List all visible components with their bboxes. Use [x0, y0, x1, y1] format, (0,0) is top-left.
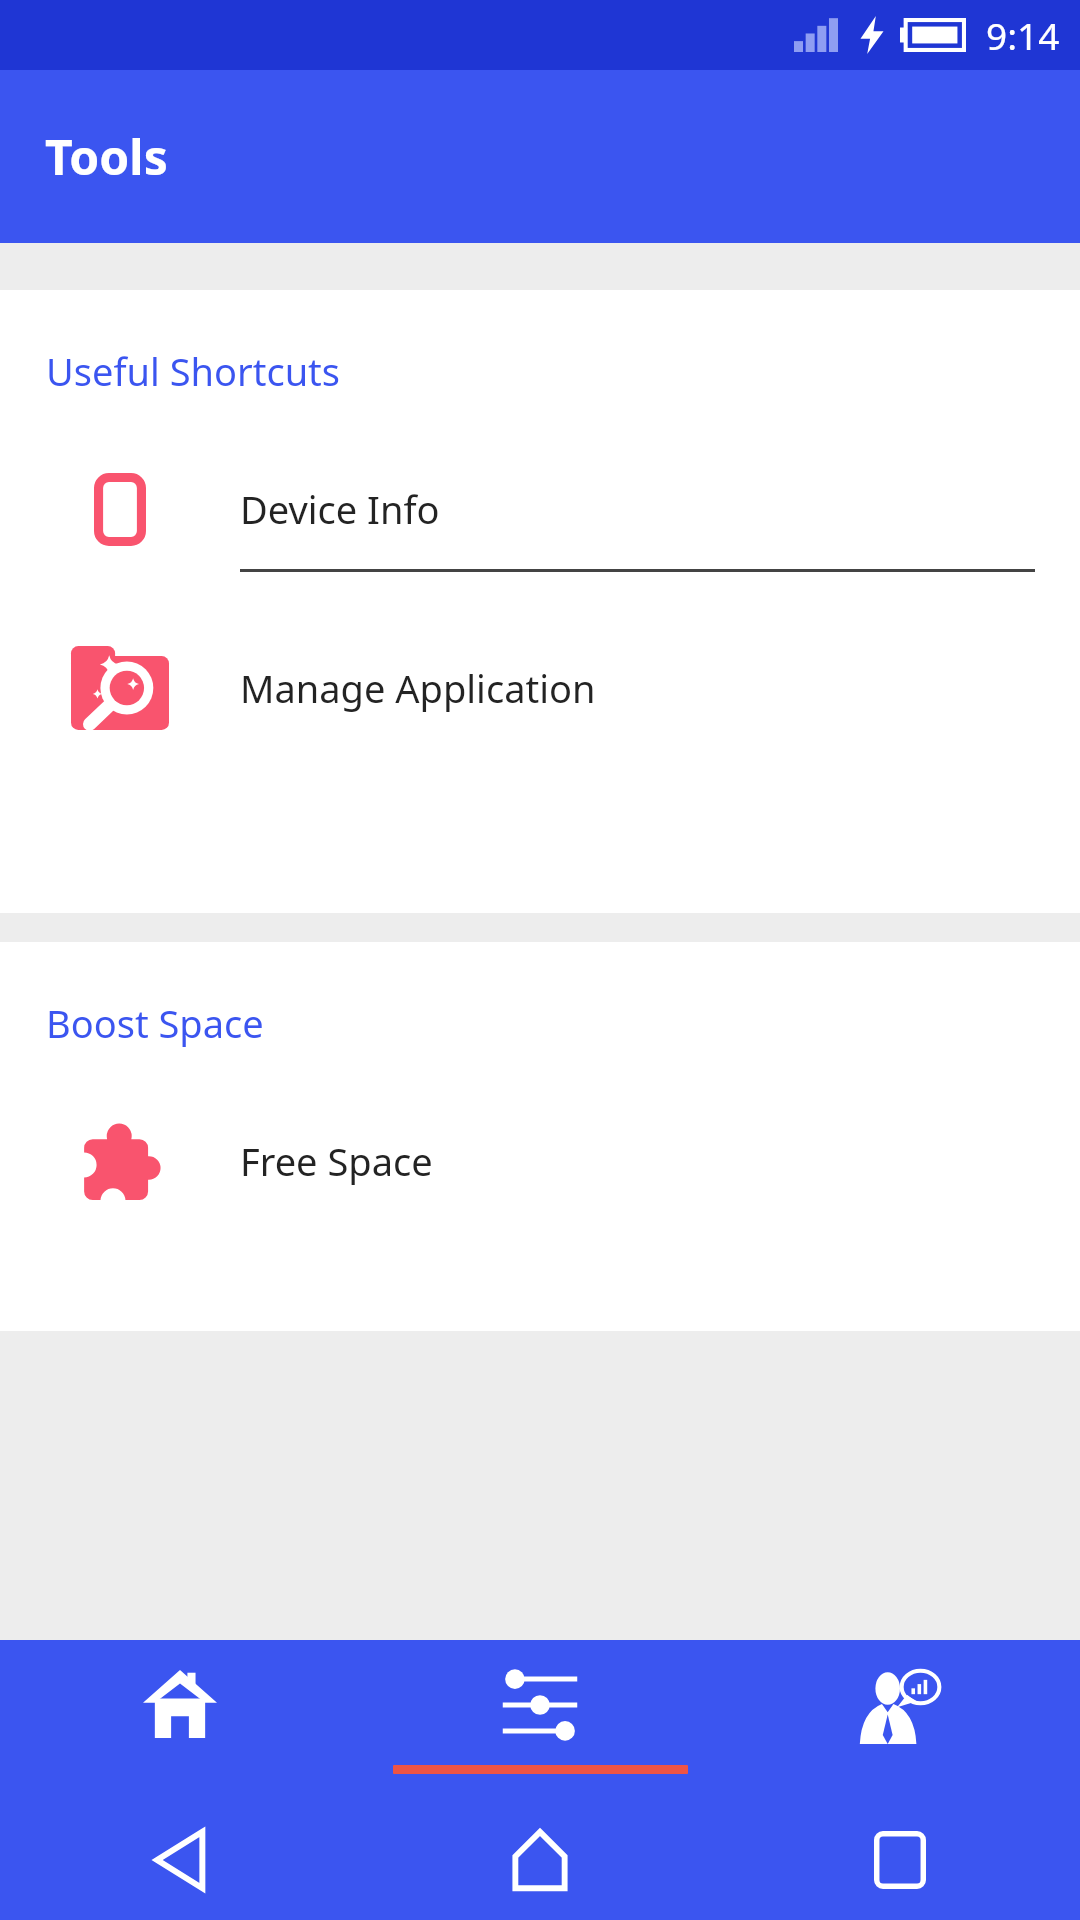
button[interactable]: Home	[0, 1640, 360, 1800]
staticText: Useful Shortcuts	[46, 345, 341, 397]
button[interactable]: Support	[720, 1640, 1080, 1800]
staticText: Free Space	[240, 1135, 433, 1187]
button[interactable]: Free Space	[0, 1101, 1080, 1221]
button[interactable]: Back	[0, 1800, 360, 1920]
button[interactable]: Tools	[360, 1640, 720, 1800]
staticText: Manage Application	[240, 662, 596, 714]
staticText: Tools	[45, 124, 168, 189]
staticText: Boost Space	[46, 997, 264, 1049]
staticText: 9:14	[986, 10, 1060, 60]
staticText: Device Info	[240, 483, 440, 535]
button[interactable]: Recents	[720, 1800, 1080, 1920]
button[interactable]: Home	[360, 1800, 720, 1920]
button[interactable]: Manage Application	[0, 628, 1080, 748]
button[interactable]: Device Info	[0, 449, 1080, 569]
